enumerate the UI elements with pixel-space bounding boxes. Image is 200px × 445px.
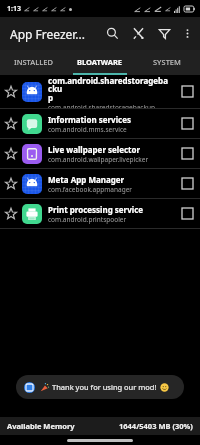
button[interactable]: Thank you for using our mod! (16, 375, 184, 399)
button[interactable]: com.android.sharedstoragebacku p (0, 75, 200, 108)
button[interactable]: Search (99, 17, 125, 50)
staticText: com.android.sharedstoragebackup (48, 103, 155, 108)
staticText: Information services (48, 114, 131, 125)
staticText: com.facebook.appmanager (48, 185, 132, 194)
button[interactable]: More options (177, 17, 197, 50)
button[interactable]: Select Meta App Manager (174, 169, 200, 198)
button[interactable]: Select com.android.sharedstoragebacku p (174, 75, 200, 108)
button[interactable]: Select Live wallpaper selector (174, 139, 200, 168)
staticText: 1:13 (7, 4, 21, 14)
button[interactable]: BLOATWARE (66, 50, 133, 73)
button[interactable]: Select Information services (174, 109, 200, 138)
staticText: com.android.printspooler (48, 215, 127, 224)
button[interactable]: Live wallpaper selector (0, 139, 200, 168)
button[interactable]: INSTALLED (0, 50, 66, 73)
button[interactable]: Print processing service (0, 199, 200, 228)
button[interactable]: Information services (0, 109, 200, 138)
button[interactable]: Tools (125, 17, 151, 50)
staticText: Meta App Manager (48, 174, 125, 185)
staticText: com.android.sharedstoragebacku p (48, 75, 170, 103)
staticText: com.android.mms.service (48, 125, 127, 134)
staticText: Live wallpaper selector (48, 144, 141, 155)
staticText: BLOATWARE (77, 57, 123, 67)
staticText: Print processing service (48, 204, 144, 215)
staticText: Available Memory (7, 421, 75, 431)
staticText: com.android.wallpaper.livepicker (48, 155, 149, 164)
staticText: SYSTEM (153, 57, 181, 67)
staticText: Thank you for using our mod! (52, 382, 157, 392)
button[interactable]: Filter (151, 17, 177, 50)
staticText: App Freezer... (10, 26, 99, 42)
button[interactable]: SYSTEM (133, 50, 200, 73)
staticText: 1644/5403 MB (30%) (119, 421, 193, 431)
button[interactable]: Select Print processing service (174, 199, 200, 228)
staticText: INSTALLED (14, 57, 53, 67)
button[interactable]: Meta App Manager (0, 169, 200, 198)
